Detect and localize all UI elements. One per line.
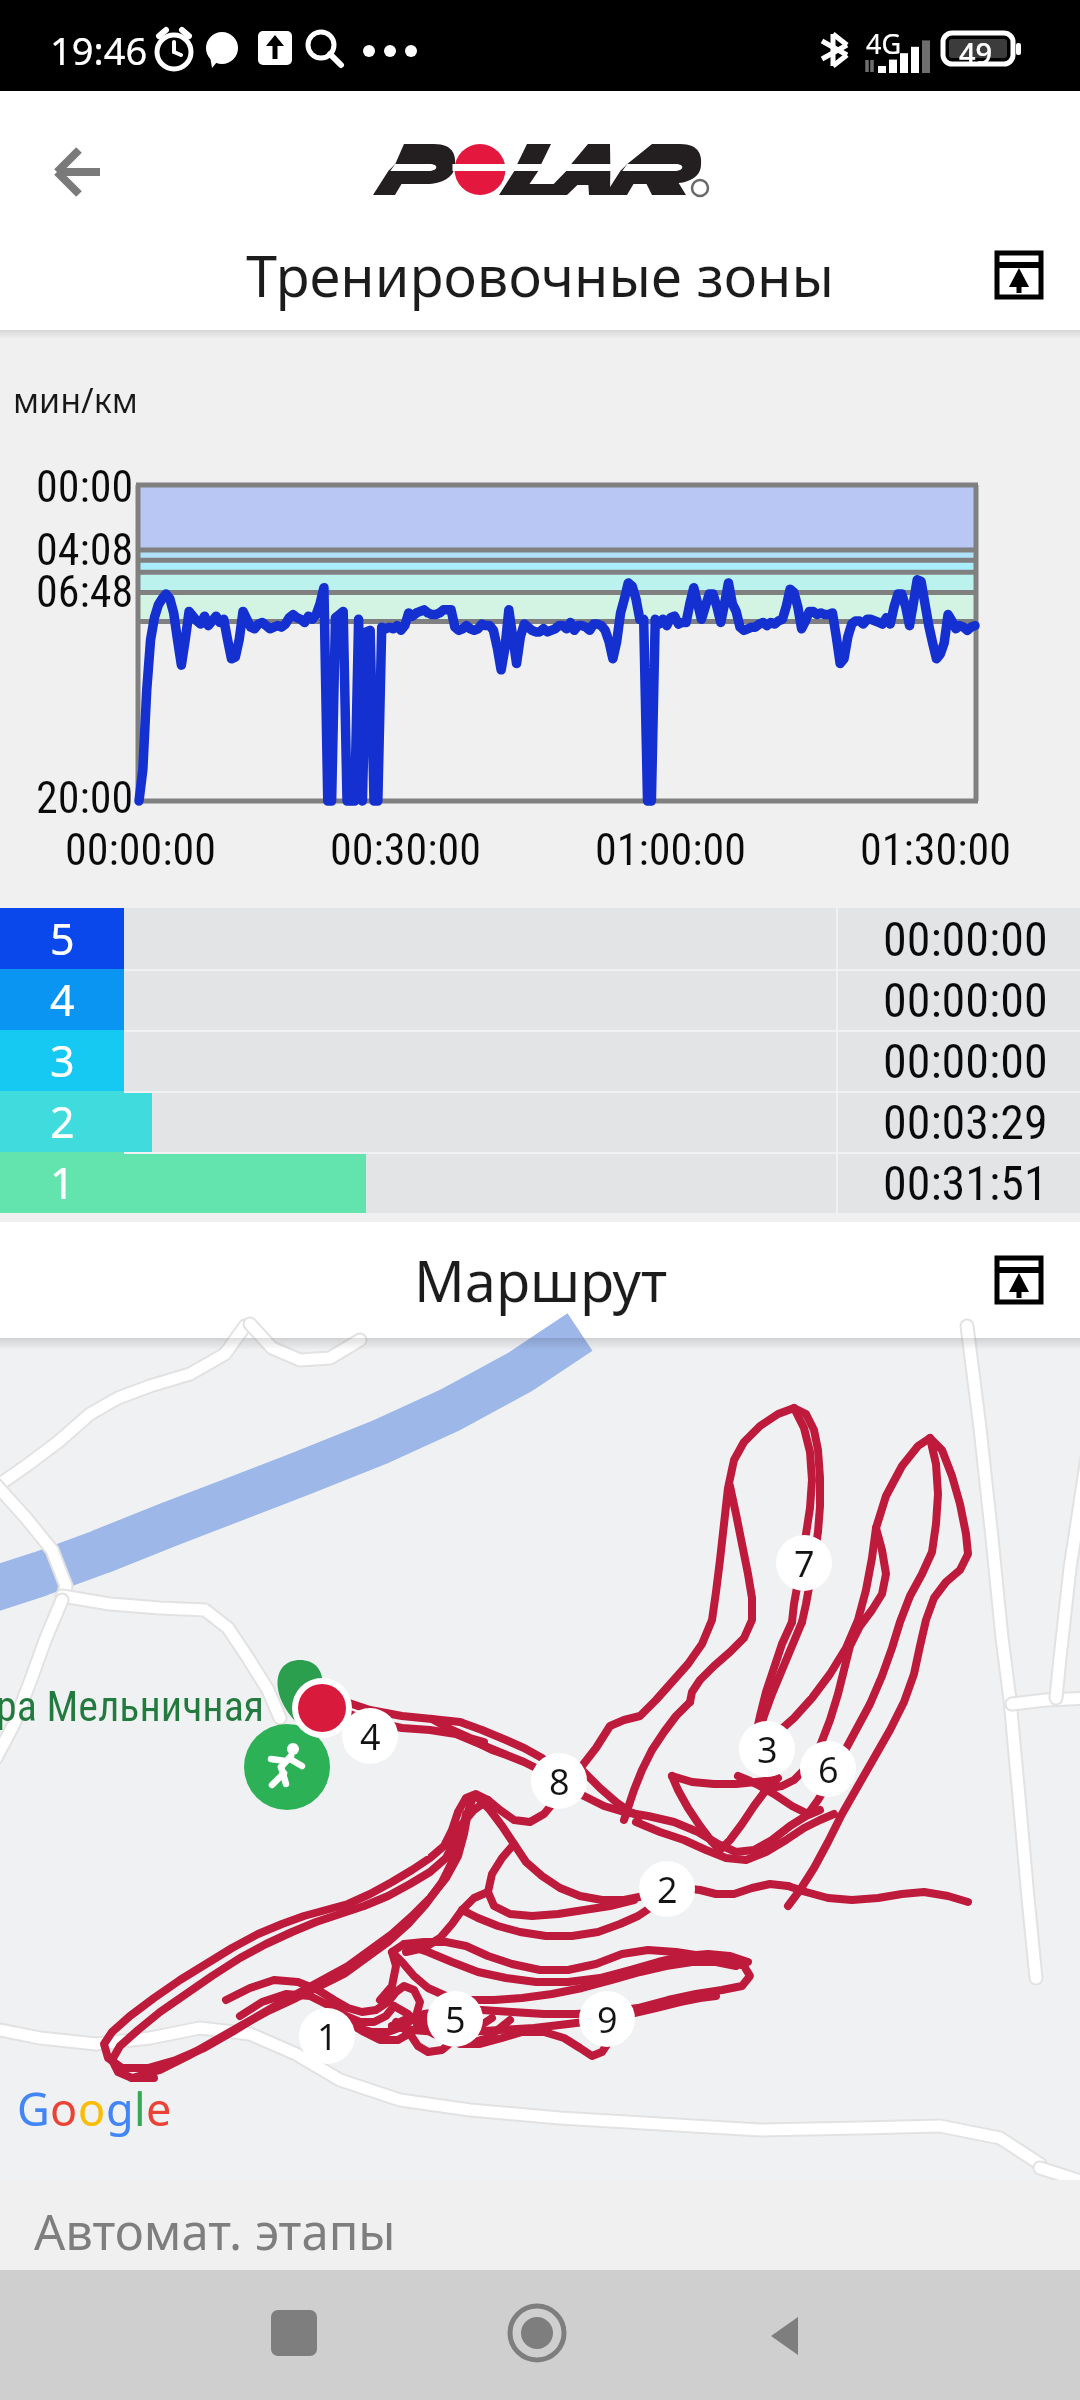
staticText: 01:00:00 [595, 824, 746, 876]
staticText: 4G [866, 25, 902, 62]
button[interactable]: 6 [800, 1741, 856, 1797]
button[interactable]: 7 [776, 1535, 832, 1591]
button[interactable]: 8 [531, 1753, 587, 1809]
staticText: 19:46 [50, 24, 148, 76]
button[interactable]: Home [489, 2285, 585, 2381]
button[interactable]: 4 [342, 1708, 398, 1764]
button[interactable]: 3 [0, 1030, 1080, 1091]
staticText: 06:48 [36, 566, 134, 618]
button[interactable]: Back [29, 123, 127, 221]
staticText: 49 [959, 33, 993, 72]
button[interactable]: Running activity [244, 1724, 330, 1810]
staticText: 4 [50, 970, 75, 1029]
staticText: Автомат. этапы [34, 2198, 396, 2265]
staticText: Маршрут [414, 1242, 667, 1318]
button[interactable]: Recent apps [246, 2285, 342, 2381]
button[interactable]: Back [737, 2285, 833, 2381]
staticText: 6 [818, 1745, 839, 1794]
other: Google [17, 2078, 172, 2139]
other: Polar [377, 144, 707, 200]
staticText: 04:08 [36, 524, 134, 576]
staticText: 1 [50, 1153, 75, 1212]
button[interactable]: 4 [0, 969, 1080, 1030]
staticText: 8 [549, 1757, 570, 1806]
staticText: 00:30:00 [330, 824, 481, 876]
staticText: o [50, 2078, 78, 2139]
button[interactable]: Expand [983, 1244, 1055, 1316]
staticText: 00:00:00 [883, 972, 1048, 1028]
staticText: 5 [445, 1995, 466, 2044]
staticText: 2 [50, 1092, 75, 1151]
staticText: 5 [50, 909, 75, 968]
staticText: g [106, 2078, 134, 2139]
button[interactable]: 9 [579, 1991, 635, 2047]
staticText: 3 [757, 1725, 778, 1774]
staticText: 00:00:00 [883, 1033, 1048, 1089]
button[interactable]: Expand [983, 239, 1055, 311]
staticText: G [17, 2078, 50, 2139]
staticText: l [134, 2078, 146, 2139]
staticText: e [146, 2078, 172, 2139]
staticText: 2 [657, 1865, 678, 1914]
staticText: 20:00 [36, 772, 134, 824]
button[interactable]: 1 [0, 1152, 1080, 1213]
staticText: 00:31:51 [883, 1155, 1048, 1211]
staticText: ра Мельничная [0, 1682, 265, 1731]
button[interactable]: 5 [0, 908, 1080, 969]
staticText: 00:03:29 [883, 1094, 1048, 1150]
button[interactable]: 5 [427, 1991, 483, 2047]
staticText: 1 [317, 2012, 338, 2061]
staticText: o [78, 2078, 106, 2139]
staticText: мин/км [13, 377, 138, 423]
staticText: 3 [50, 1031, 75, 1090]
staticText: 00:00:00 [65, 824, 216, 876]
staticText: Тренировочные зоны [246, 237, 834, 313]
staticText: 00:00 [36, 461, 134, 513]
staticText: 9 [597, 1995, 618, 2044]
button[interactable]: 2 [0, 1091, 1080, 1152]
button[interactable]: 3 [739, 1721, 795, 1777]
button[interactable]: 1 [299, 2008, 355, 2064]
staticText: 00:00:00 [883, 911, 1048, 967]
staticText: 4 [360, 1712, 381, 1761]
staticText: 7 [794, 1539, 815, 1588]
staticText: 01:30:00 [860, 824, 1011, 876]
button[interactable]: 2 [639, 1861, 695, 1917]
